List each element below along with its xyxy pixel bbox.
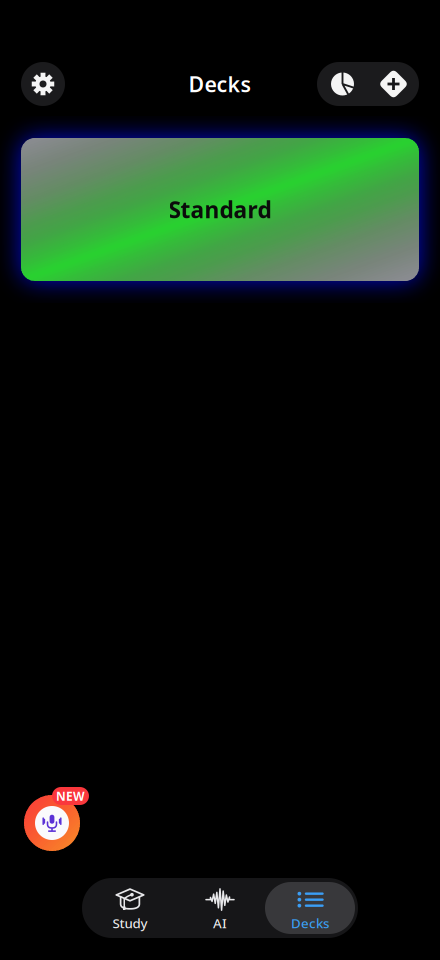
staticText: Decks	[188, 70, 251, 98]
button[interactable]: AI	[175, 882, 265, 934]
button[interactable]: Settings	[21, 62, 65, 106]
button[interactable]: Statistics	[317, 62, 368, 106]
button[interactable]: Voice input	[24, 795, 80, 851]
button[interactable]: New deck	[368, 62, 419, 106]
button[interactable]: Decks	[265, 882, 355, 934]
staticText: Decks	[291, 914, 329, 932]
staticText: NEW	[56, 788, 85, 804]
button[interactable]: Study	[85, 882, 175, 934]
staticText: AI	[213, 914, 227, 932]
staticText: Standard	[168, 194, 271, 224]
staticText: Study	[112, 914, 147, 932]
